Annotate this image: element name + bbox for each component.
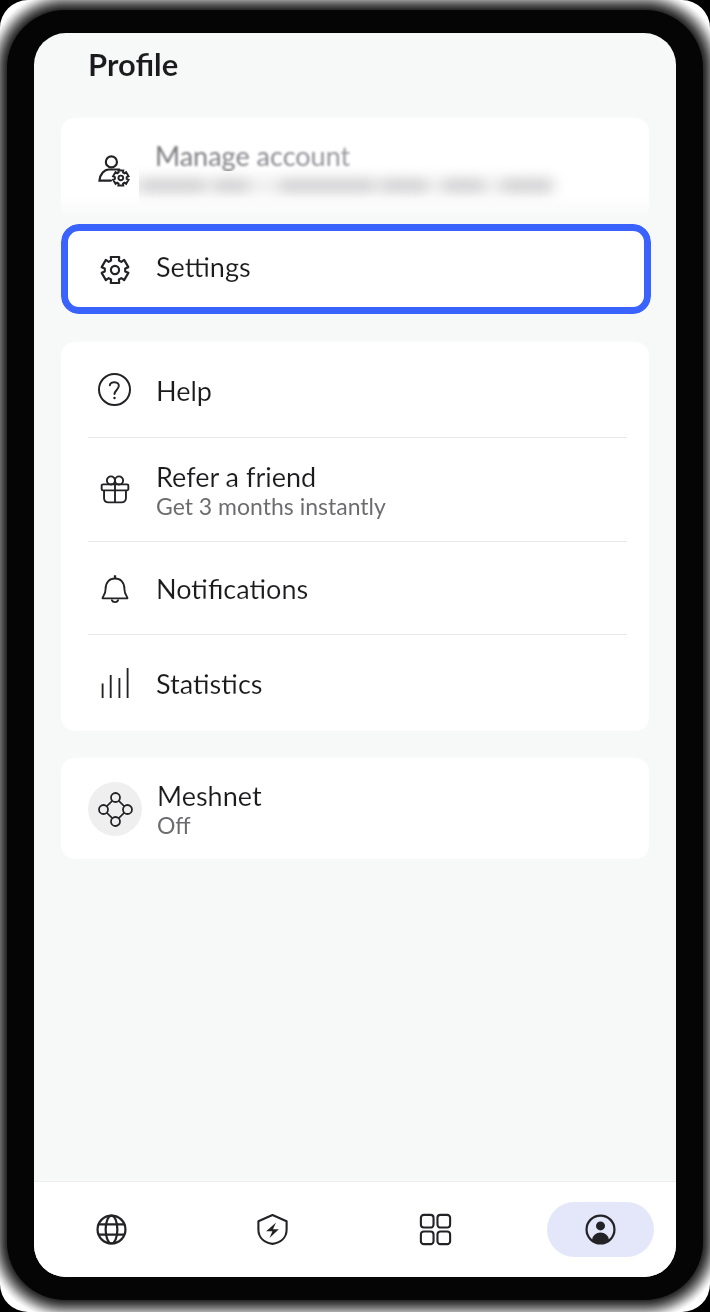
staticText: Notifications: [156, 572, 309, 604]
staticText: Settings: [156, 250, 251, 282]
staticText: Get 3 months instantly: [156, 492, 386, 520]
staticText: Statistics: [156, 667, 263, 699]
button[interactable]: Meshnet: [61, 758, 649, 859]
button[interactable]: Apps: [402, 1196, 468, 1262]
button[interactable]: Settings: [61, 224, 651, 314]
button[interactable]: Notifications: [61, 542, 649, 634]
button[interactable]: Protection: [239, 1196, 305, 1262]
button[interactable]: Refer a friend: [61, 438, 649, 541]
staticText: Help: [156, 374, 212, 406]
staticText: Profile: [88, 45, 179, 82]
staticText: Refer a friend: [156, 460, 317, 492]
button[interactable]: Profile: [547, 1202, 654, 1257]
staticText: Manage account: [155, 139, 351, 171]
button[interactable]: Statistics: [61, 635, 649, 731]
staticText: Meshnet: [157, 779, 262, 811]
button[interactable]: Help: [61, 342, 649, 437]
staticText: Off: [157, 811, 191, 839]
button[interactable]: Browse: [78, 1196, 144, 1262]
button[interactable]: Manage account: [61, 118, 649, 220]
